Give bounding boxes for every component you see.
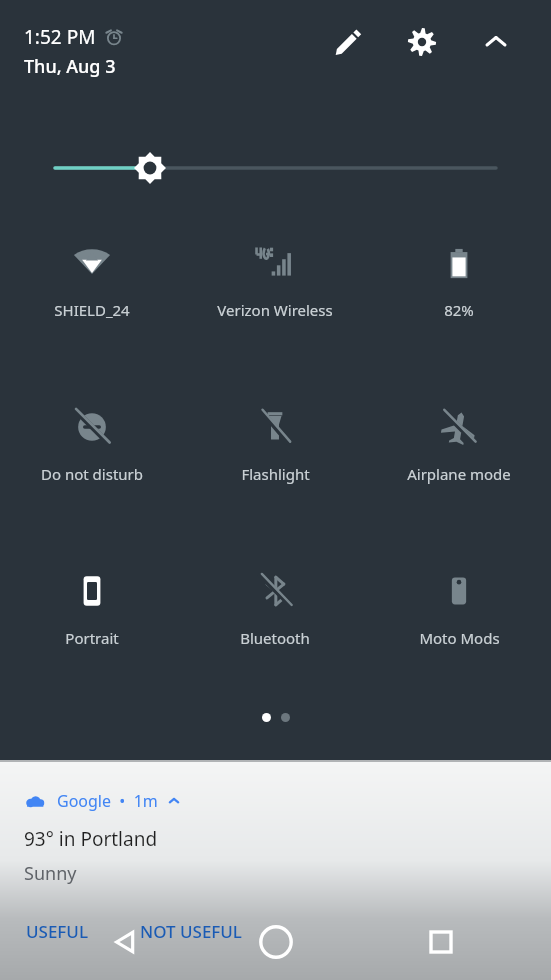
button[interactable]: Bluetooth xyxy=(183,566,367,652)
staticText: Flashlight xyxy=(241,464,310,484)
button[interactable]: Do not disturb xyxy=(0,402,183,488)
staticText: 93° in Portland xyxy=(24,826,158,852)
staticText: 1:52 PM xyxy=(24,24,96,50)
staticText: Portrait xyxy=(65,628,119,648)
staticText: USEFUL xyxy=(26,920,88,943)
button[interactable]: Back xyxy=(102,919,148,965)
button[interactable]: Moto Mods xyxy=(367,566,551,652)
button[interactable]: Google • 1m xyxy=(0,762,551,886)
button[interactable]: Collapse xyxy=(481,27,511,57)
button[interactable]: NOT USEFUL xyxy=(136,914,246,949)
staticText: SHIELD_24 xyxy=(54,300,130,320)
staticText: Verizon Wireless xyxy=(217,300,333,320)
button[interactable]: Home xyxy=(250,916,302,968)
button[interactable]: Brightness xyxy=(0,140,551,196)
staticText: Moto Mods xyxy=(419,628,500,648)
button[interactable]: USEFUL xyxy=(22,914,92,949)
button[interactable]: Flashlight xyxy=(183,402,367,488)
staticText: Airplane mode xyxy=(407,464,511,484)
staticText: 82% xyxy=(444,300,474,320)
button[interactable]: Airplane mode xyxy=(367,402,551,488)
button[interactable]: Screen rotation xyxy=(0,566,183,652)
button[interactable]: Recent apps xyxy=(418,919,464,965)
staticText: Bluetooth xyxy=(240,628,310,648)
button[interactable]: Battery xyxy=(367,238,551,324)
staticText: Google • 1m xyxy=(57,790,158,812)
button[interactable]: Edit xyxy=(333,27,363,57)
staticText: Thu, Aug 3 xyxy=(24,54,116,79)
button[interactable]: Settings xyxy=(407,27,437,57)
button[interactable]: Mobile data xyxy=(183,238,367,324)
button[interactable]: Wi-Fi xyxy=(0,238,183,324)
staticText: Sunny xyxy=(24,861,77,886)
staticText: Do not disturb xyxy=(41,464,143,484)
staticText: NOT USEFUL xyxy=(140,920,242,943)
